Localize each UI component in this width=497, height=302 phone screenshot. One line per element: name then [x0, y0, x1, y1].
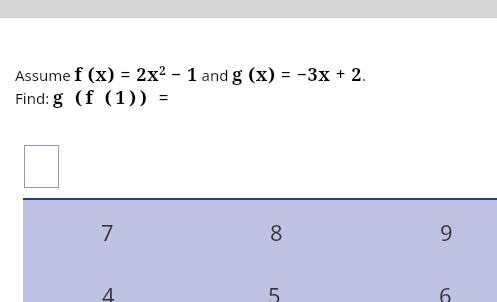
button[interactable]: 5	[244, 267, 304, 302]
button[interactable]: 8	[246, 204, 306, 260]
staticText: 5	[268, 280, 281, 302]
button[interactable]: 9	[416, 204, 476, 260]
staticText: Assume f (x) = 2x2 − 1 and g (x) = −3x +…	[15, 62, 367, 87]
button[interactable]: 7	[77, 204, 137, 260]
staticText: Find: g (f (1)) =	[15, 85, 173, 110]
staticText: 6	[439, 280, 452, 302]
button[interactable]: 6	[415, 267, 475, 302]
button[interactable]: 4	[78, 267, 138, 302]
button[interactable]	[24, 145, 59, 188]
staticText: 7	[101, 217, 114, 247]
staticText: 8	[270, 217, 283, 247]
staticText: 9	[440, 217, 453, 247]
staticText: 4	[102, 280, 115, 302]
